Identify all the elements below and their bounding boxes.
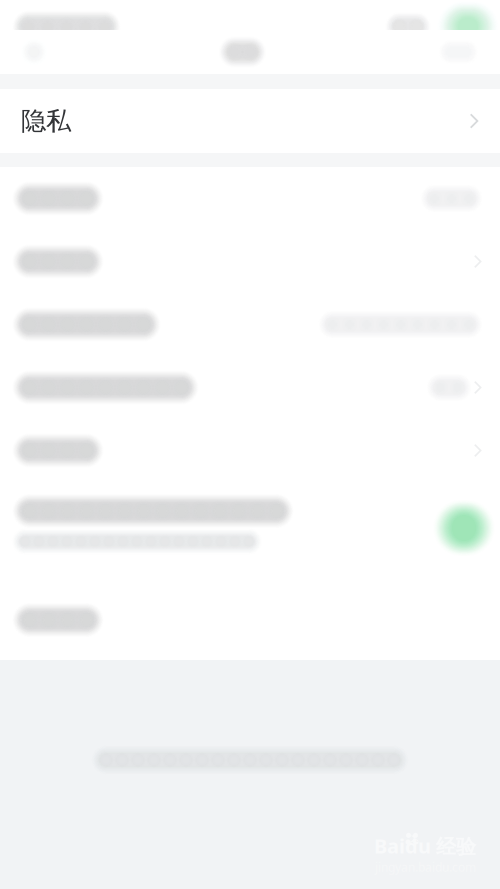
- button[interactable]: [0, 230, 500, 293]
- button[interactable]: [0, 419, 500, 482]
- button[interactable]: [0, 293, 500, 356]
- button[interactable]: [0, 167, 500, 230]
- staticText: 隐私: [21, 105, 71, 136]
- button[interactable]: [0, 580, 500, 660]
- button[interactable]: [0, 356, 500, 419]
- button[interactable]: [0, 482, 500, 580]
- button[interactable]: 隐私: [0, 89, 500, 153]
